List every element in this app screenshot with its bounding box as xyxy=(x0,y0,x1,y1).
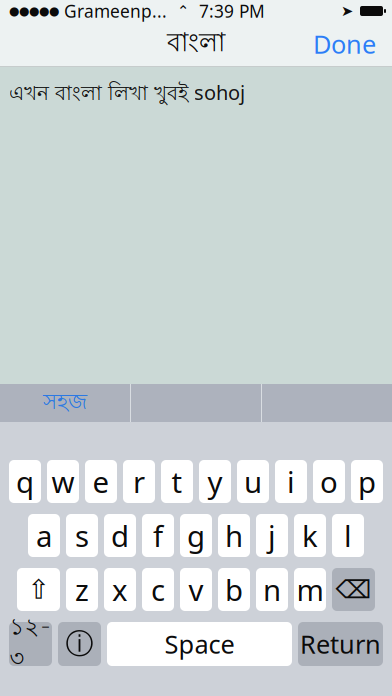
staticText: ⌫ xyxy=(335,575,371,604)
button[interactable]: Info xyxy=(58,622,101,666)
staticText: r xyxy=(133,462,145,501)
staticText: 7:39 PM xyxy=(189,0,265,22)
staticText: q xyxy=(16,462,34,501)
button[interactable]: b xyxy=(218,568,250,611)
staticText: ⇧ xyxy=(27,574,49,605)
staticText: i xyxy=(287,462,295,501)
staticText: e xyxy=(92,462,109,501)
staticText: ●●●●● xyxy=(9,4,59,18)
button[interactable]: z xyxy=(66,568,98,611)
staticText: f xyxy=(153,516,163,555)
staticText: u xyxy=(244,462,262,501)
staticText: ⓘ xyxy=(65,627,93,661)
button[interactable]: c xyxy=(142,568,174,611)
button[interactable]: সহজ xyxy=(0,384,130,422)
staticText: m xyxy=(296,570,323,609)
staticText: v xyxy=(188,570,203,609)
staticText: এখন বাংলা লিখা খুবই sohoj xyxy=(9,79,245,108)
staticText: বাংলা xyxy=(167,27,225,61)
button[interactable]: t xyxy=(161,460,193,503)
staticText: Space xyxy=(164,627,234,661)
staticText: h xyxy=(225,516,243,555)
staticText: l xyxy=(344,516,352,555)
button[interactable]: Shift xyxy=(17,568,60,611)
button[interactable]: q xyxy=(9,460,41,503)
button[interactable]: y xyxy=(199,460,231,503)
staticText: Grameenp... xyxy=(59,0,167,22)
button[interactable]: p xyxy=(351,460,383,503)
button[interactable]: g xyxy=(180,514,212,557)
button[interactable]: j xyxy=(256,514,288,557)
button[interactable]: v xyxy=(180,568,212,611)
button[interactable]: a xyxy=(28,514,60,557)
staticText: সহজ xyxy=(43,388,87,418)
staticText: p xyxy=(358,462,376,501)
staticText: Done xyxy=(313,27,376,61)
button[interactable]: s xyxy=(66,514,98,557)
staticText: g xyxy=(187,516,205,555)
button[interactable]: l xyxy=(332,514,364,557)
staticText: ➤ xyxy=(341,3,353,19)
staticText: d xyxy=(111,516,129,555)
button[interactable]: r xyxy=(123,460,155,503)
staticText: k xyxy=(302,516,318,555)
button[interactable]: k xyxy=(294,514,326,557)
staticText: w xyxy=(51,462,74,501)
button[interactable]: Return xyxy=(298,622,383,666)
staticText: x xyxy=(112,570,128,609)
staticText: y xyxy=(207,462,222,501)
staticText: ⌃ xyxy=(167,3,189,19)
button[interactable]: w xyxy=(47,460,79,503)
staticText: c xyxy=(151,570,165,609)
staticText: o xyxy=(320,462,338,501)
staticText: b xyxy=(225,570,243,609)
staticText: n xyxy=(263,570,281,609)
button[interactable]: Numbers xyxy=(9,622,52,666)
button[interactable]: Space xyxy=(107,622,292,666)
staticText: ১২৩ xyxy=(9,613,51,675)
button[interactable]: n xyxy=(256,568,288,611)
button[interactable]: Delete xyxy=(332,568,375,611)
staticText: Return xyxy=(300,627,381,661)
button[interactable]: f xyxy=(142,514,174,557)
staticText: a xyxy=(36,516,52,555)
button[interactable]: m xyxy=(294,568,326,611)
button[interactable]: x xyxy=(104,568,136,611)
button[interactable]: o xyxy=(313,460,345,503)
button[interactable]: i xyxy=(275,460,307,503)
staticText: j xyxy=(268,516,276,555)
staticText: t xyxy=(171,462,182,501)
staticText: s xyxy=(75,516,89,555)
button[interactable]: Done xyxy=(301,19,388,69)
button[interactable]: e xyxy=(85,460,117,503)
button[interactable]: d xyxy=(104,514,136,557)
staticText: z xyxy=(75,570,89,609)
button[interactable]: u xyxy=(237,460,269,503)
button[interactable]: h xyxy=(218,514,250,557)
